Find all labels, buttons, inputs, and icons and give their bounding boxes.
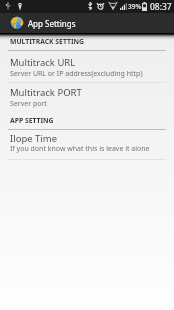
- button[interactable]: Multitrack URL: [0, 50, 174, 82]
- staticText: Ilope Time: [10, 132, 58, 145]
- staticText: Server port: [10, 99, 47, 109]
- staticText: Multitrack PORT: [10, 86, 82, 99]
- other: Wi-Fi: [109, 2, 117, 10]
- other: Mobile signal: [120, 3, 127, 10]
- staticText: 39%: [128, 2, 142, 11]
- other: USB connected: [5, 2, 11, 10]
- button[interactable]: App icon: [0, 13, 174, 33]
- staticText: Multitrack URL: [10, 56, 76, 69]
- staticText: MULTITRACK SETTING: [10, 37, 84, 46]
- staticText: If you dont know what this is leave it a…: [10, 144, 150, 154]
- other: Bluetooth: [88, 2, 93, 10]
- button[interactable]: Multitrack PORT: [0, 82, 174, 113]
- other: App icon: [10, 16, 24, 30]
- button[interactable]: Ilope Time: [0, 129, 174, 159]
- staticText: APP SETTING: [10, 116, 54, 125]
- staticText: Server URL or IP address(excluding http): [10, 69, 143, 79]
- staticText: App Settings: [28, 18, 76, 29]
- other: Location: [17, 1, 23, 11]
- other: Battery 39 percent: [142, 2, 147, 11]
- other: Alarm set: [97, 2, 104, 10]
- staticText: 08:37: [150, 1, 172, 13]
